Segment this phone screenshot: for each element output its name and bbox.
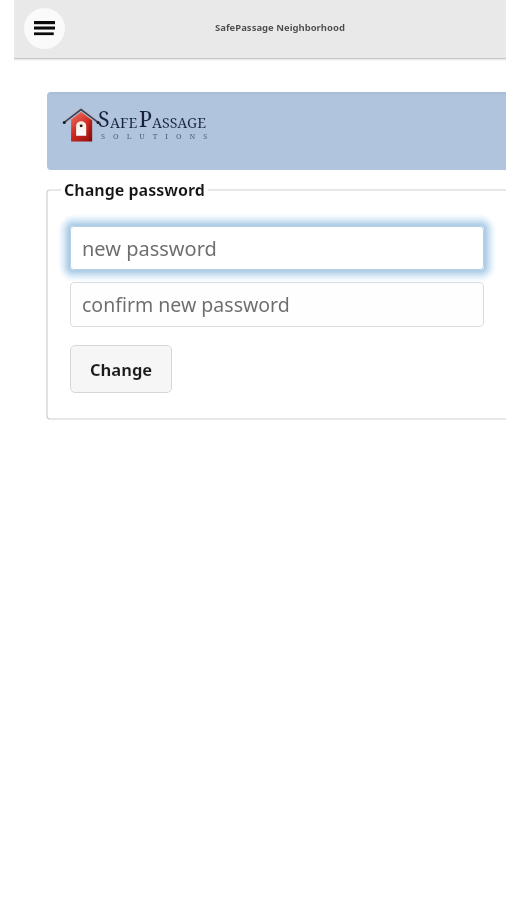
button[interactable]: Open navigation menu [24, 8, 65, 49]
staticText: AFE [110, 113, 138, 132]
button[interactable]: Change [70, 345, 172, 393]
button[interactable]: new password [70, 226, 484, 270]
staticText: SOLUTIONS [101, 131, 216, 141]
staticText: confirm new password [82, 291, 290, 318]
staticText: Change [90, 358, 153, 380]
staticText: S [98, 105, 110, 134]
staticText: new password [82, 235, 217, 262]
staticText: ASSAGE [152, 113, 207, 132]
staticText: P [139, 105, 152, 134]
staticText: SafePassage Neighborhood [215, 21, 345, 34]
staticText: Change password [64, 179, 205, 201]
button[interactable]: confirm new password [70, 282, 484, 327]
button[interactable]: SafePassage Solutions home [47, 92, 506, 170]
